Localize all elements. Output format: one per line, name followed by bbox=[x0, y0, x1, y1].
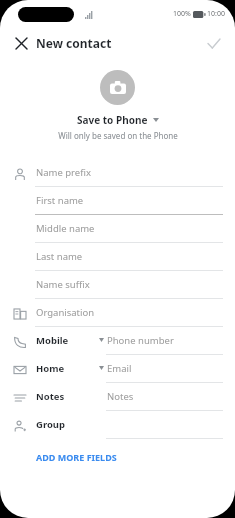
staticText: Mobile bbox=[36, 334, 69, 347]
staticText: Save to Phone bbox=[77, 113, 148, 127]
staticText: Name prefix bbox=[36, 166, 91, 179]
staticText: Home bbox=[36, 362, 65, 375]
staticText: 10:00 bbox=[207, 9, 225, 19]
staticText: Middle name bbox=[36, 222, 95, 235]
button[interactable]: First name bbox=[0, 187, 235, 215]
staticText: New contact bbox=[36, 35, 112, 51]
staticText: First name bbox=[36, 194, 84, 207]
staticText: Last name bbox=[36, 250, 83, 263]
button[interactable]: Mobile bbox=[0, 327, 235, 355]
staticText: Organisation bbox=[36, 306, 95, 319]
staticText: Will only be saved on the Phone bbox=[58, 130, 178, 141]
button[interactable]: Name prefix bbox=[0, 159, 235, 187]
staticText: Name suffix bbox=[36, 278, 90, 291]
staticText: Notes bbox=[107, 390, 134, 403]
staticText: ADD MORE FIELDS bbox=[36, 451, 117, 463]
button[interactable]: Close bbox=[8, 30, 34, 56]
staticText: Notes bbox=[36, 390, 65, 403]
staticText: Email bbox=[107, 362, 132, 375]
staticText: 100% bbox=[173, 9, 191, 19]
staticText: Group bbox=[36, 418, 66, 431]
button[interactable]: Middle name bbox=[0, 215, 235, 243]
button[interactable]: Organisation bbox=[0, 299, 235, 327]
button[interactable]: Save to Phone bbox=[77, 113, 159, 127]
button[interactable]: Last name bbox=[0, 243, 235, 271]
button[interactable]: Save bbox=[201, 30, 227, 56]
button[interactable]: Group bbox=[0, 411, 235, 439]
button[interactable]: Name suffix bbox=[0, 271, 235, 299]
button[interactable]: Add photo bbox=[100, 70, 135, 105]
button[interactable]: Notes bbox=[0, 383, 235, 411]
button[interactable]: Home bbox=[0, 355, 235, 383]
button[interactable]: ADD MORE FIELDS bbox=[28, 447, 125, 467]
staticText: Phone number bbox=[107, 334, 174, 347]
